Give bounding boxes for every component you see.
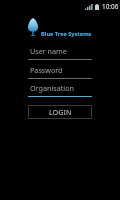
staticText: Blue Tree Systems xyxy=(41,30,92,38)
staticText: User name xyxy=(30,46,67,56)
button[interactable]: LOGIN xyxy=(28,105,92,119)
button[interactable]: User name xyxy=(28,46,92,60)
staticText: LOGIN xyxy=(49,107,72,117)
button[interactable]: Password xyxy=(28,65,92,79)
staticText: 10:06 xyxy=(102,2,119,11)
button[interactable]: Organisation xyxy=(28,83,92,97)
staticText: Organisation xyxy=(30,83,74,93)
staticText: Password xyxy=(30,65,63,75)
